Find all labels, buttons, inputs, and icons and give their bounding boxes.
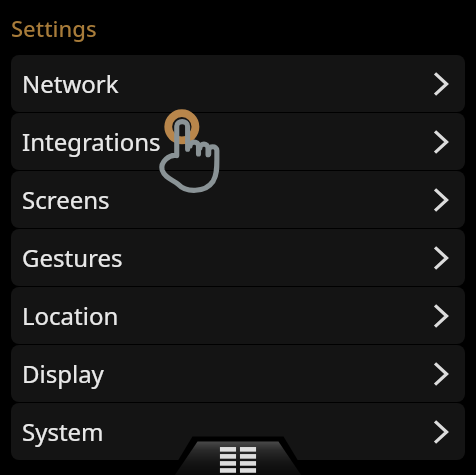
staticText: Settings <box>11 13 97 43</box>
staticText: Display <box>22 357 104 390</box>
staticText: Screens <box>22 183 110 216</box>
button[interactable]: Network <box>11 55 465 112</box>
staticText: Gestures <box>22 241 123 274</box>
button[interactable]: Location <box>11 287 465 344</box>
button[interactable]: System <box>11 403 465 460</box>
button[interactable]: Gestures <box>11 229 465 286</box>
staticText: System <box>22 415 104 448</box>
staticText: Integrations <box>22 125 161 158</box>
button[interactable]: App list <box>168 432 308 475</box>
button[interactable]: Display <box>11 345 465 402</box>
staticText: Location <box>22 299 119 332</box>
button[interactable]: Screens <box>11 171 465 228</box>
button[interactable]: Integrations <box>11 113 465 170</box>
staticText: Network <box>22 67 119 100</box>
